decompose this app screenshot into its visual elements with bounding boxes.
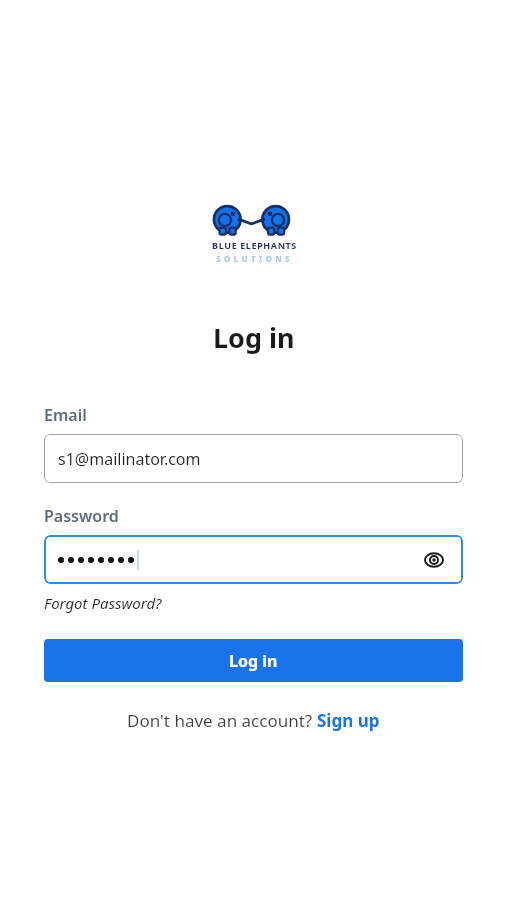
staticText: Forgot Password? xyxy=(44,593,162,613)
button[interactable]: Show password xyxy=(44,535,463,584)
button[interactable]: Forgot Password? xyxy=(44,593,162,613)
staticText: Log in xyxy=(229,650,278,672)
button[interactable]: s1@mailinator.com xyxy=(44,434,463,483)
staticText: Sign up xyxy=(317,709,380,732)
button[interactable]: Log in xyxy=(44,639,463,682)
staticText: BLUE ELEPHANTS xyxy=(212,239,297,251)
staticText: s1@mailinator.com xyxy=(58,448,201,470)
staticText: Password xyxy=(44,505,119,527)
staticText: SOLUTIONS xyxy=(216,253,293,264)
button[interactable]: Show password xyxy=(419,545,449,575)
staticText: Don't have an account? xyxy=(127,709,317,732)
button[interactable]: Sign up xyxy=(317,709,380,732)
staticText: Email xyxy=(44,404,87,426)
staticText: Log in xyxy=(213,319,295,356)
